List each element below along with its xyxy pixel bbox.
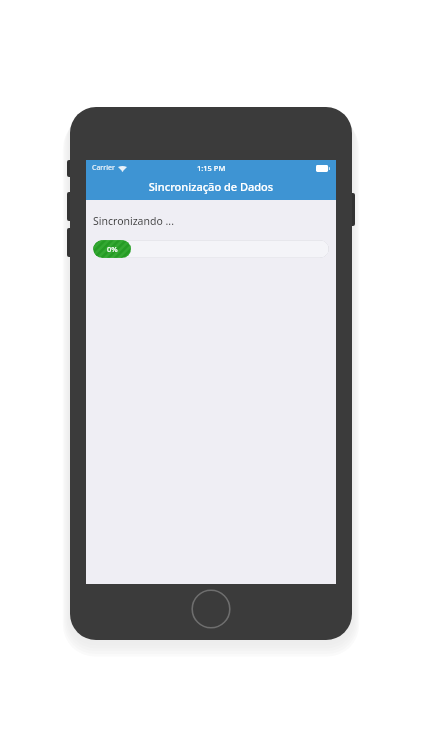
other: Volume down <box>67 228 72 257</box>
other: Silent switch <box>67 160 72 177</box>
staticText: Carrier <box>92 163 115 173</box>
staticText: Sincronização de Dados <box>86 179 336 194</box>
staticText: 1:15 PM <box>197 163 226 173</box>
staticText: Sincronizando ... <box>93 214 174 228</box>
button[interactable]: 0% <box>93 240 329 258</box>
staticText: 0% <box>107 244 118 254</box>
other: Power <box>350 193 355 226</box>
other: Volume up <box>67 192 72 221</box>
button[interactable]: Home <box>191 589 231 629</box>
